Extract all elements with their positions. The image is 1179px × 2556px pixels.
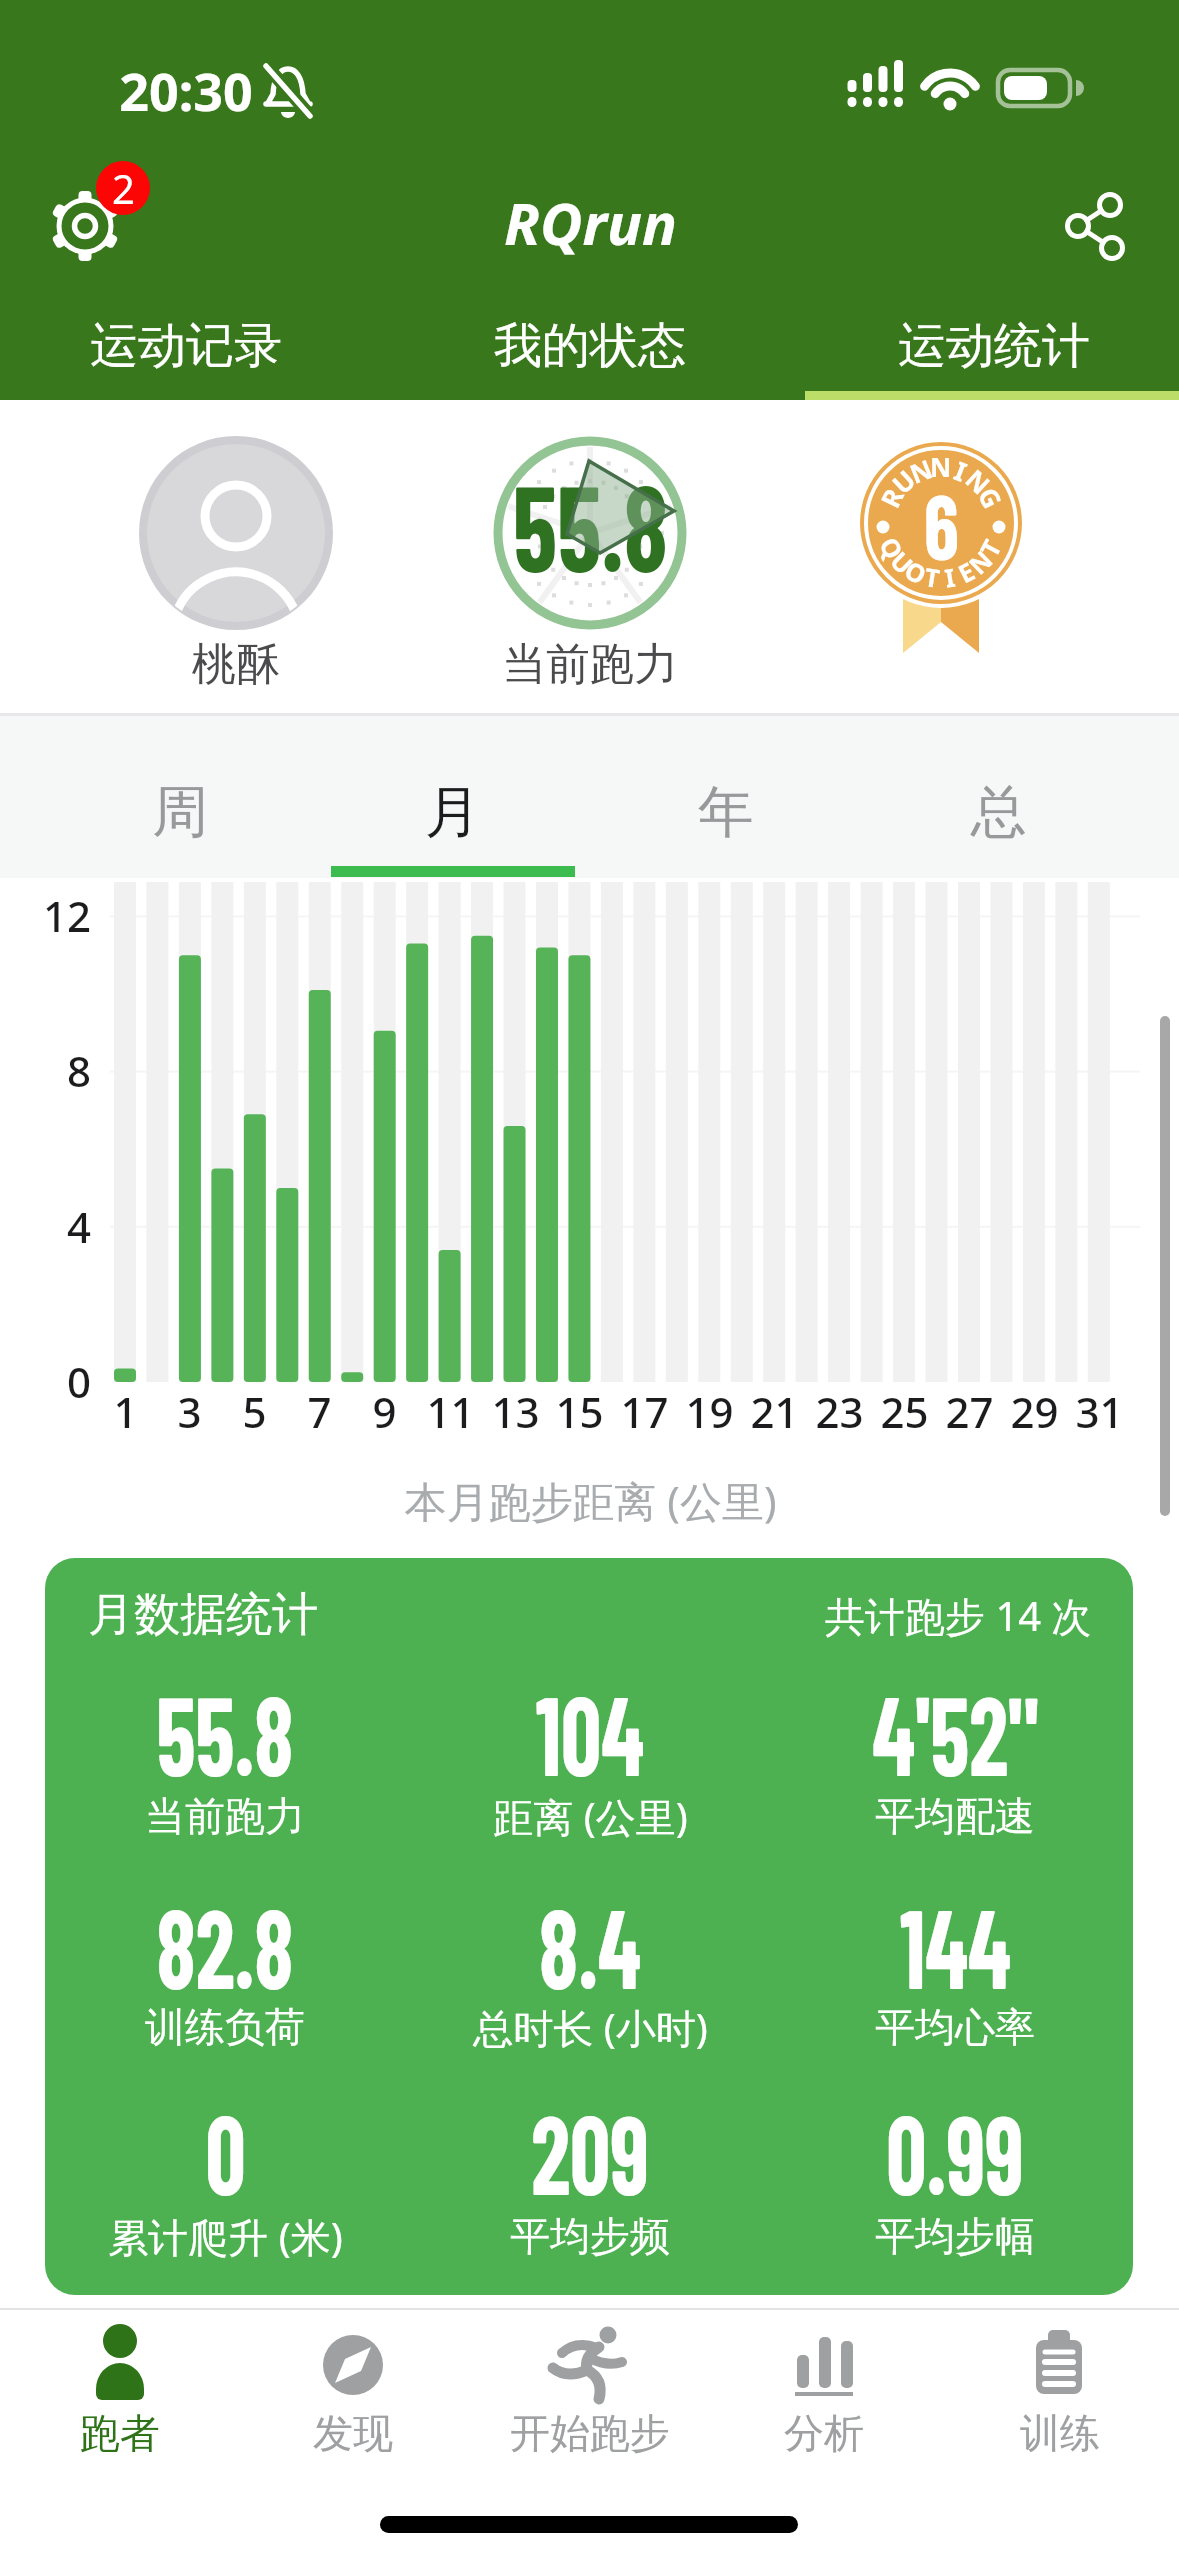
staticText: T [972, 533, 1009, 562]
staticText: 13 [491, 1383, 540, 1440]
staticText: 25 [880, 1383, 929, 1440]
staticText: 0 [67, 1353, 92, 1410]
button[interactable] [140, 436, 334, 630]
staticText: 距离 (公里) [493, 1789, 688, 1844]
staticText: 当前跑力 [502, 637, 678, 692]
staticText: 55.8 [513, 451, 668, 596]
staticText: I [950, 452, 973, 489]
button[interactable] [1040, 180, 1140, 280]
staticText: 5 [242, 1383, 267, 1440]
button[interactable] [855, 436, 1035, 636]
staticText: 104 [536, 1665, 644, 1798]
staticText: 82.8 [156, 1878, 294, 2011]
staticText: 平均步幅 [875, 2211, 1035, 2261]
button[interactable] [493, 436, 687, 630]
staticText: 年 [698, 777, 754, 848]
button[interactable]: 月 [371, 745, 535, 879]
button[interactable]: 分析 [724, 2385, 924, 2481]
staticText: 平均心率 [875, 2002, 1035, 2052]
staticText: 总 [971, 777, 1027, 848]
staticText: 月数据统计 [88, 1586, 318, 1644]
button[interactable]: 开始跑步 [430, 2385, 750, 2481]
staticText: 8.4 [539, 1878, 641, 2011]
staticText: 2 [112, 161, 135, 215]
button[interactable]: 我的状态 [406, 288, 774, 403]
staticText: N [930, 449, 952, 484]
button[interactable] [40, 170, 150, 280]
button[interactable] [530, 2320, 650, 2450]
staticText: 运动记录 [90, 316, 282, 376]
staticText: O [899, 552, 933, 592]
staticText: 27 [945, 1383, 994, 1440]
staticText: 平均配速 [875, 1791, 1035, 1841]
staticText: 发现 [313, 2408, 393, 2458]
staticText: 20:30 [119, 55, 253, 126]
staticText: Q [872, 531, 912, 565]
staticText: 19 [685, 1383, 734, 1440]
button[interactable]: 跑者 [20, 2385, 220, 2481]
button[interactable] [764, 2320, 884, 2450]
staticText: 11 [426, 1383, 475, 1440]
staticText: 开始跑步 [510, 2408, 670, 2458]
staticText: 55.8 [156, 1665, 294, 1798]
staticText: 总时长 (小时) [473, 2000, 708, 2055]
staticText: 训练 [1020, 2408, 1100, 2458]
staticText: 29 [1010, 1383, 1059, 1440]
button[interactable]: 运动统计 [810, 288, 1178, 403]
staticText: 月 [425, 777, 481, 848]
button[interactable] [293, 2320, 413, 2450]
button[interactable] [60, 2320, 180, 2450]
staticText: 本月跑步距离 (公里) [404, 1472, 777, 1529]
staticText: R [872, 481, 911, 513]
staticText: 1 [113, 1383, 138, 1440]
staticText: 17 [620, 1383, 669, 1440]
staticText: 共计跑步 14 次 [825, 1588, 1092, 1643]
staticText: 31 [1075, 1383, 1124, 1440]
staticText: 累计爬升 (米) [108, 2209, 343, 2264]
button[interactable]: 训练 [960, 2385, 1160, 2481]
staticText: 3 [177, 1383, 202, 1440]
staticText: N [905, 450, 938, 491]
staticText: I [942, 559, 957, 594]
staticText: 0 [205, 2084, 246, 2217]
staticText: 跑者 [80, 2408, 160, 2458]
staticText: 平均步频 [510, 2211, 670, 2261]
staticText: 8 [67, 1042, 92, 1099]
staticText: 周 [152, 777, 208, 848]
staticText: 23 [815, 1383, 864, 1440]
staticText: 209 [531, 2084, 649, 2217]
staticText: 4'52" [872, 1665, 1039, 1798]
staticText: 12 [43, 887, 92, 944]
staticText: 训练负荷 [145, 2002, 305, 2052]
staticText: 7 [307, 1383, 332, 1440]
staticText: U [884, 462, 922, 501]
button[interactable] [45, 1558, 1133, 2295]
staticText: U [884, 543, 921, 581]
staticText: E [952, 553, 981, 590]
staticText: 我的状态 [494, 316, 686, 376]
staticText: 当前跑力 [145, 1791, 305, 1841]
staticText: 21 [750, 1383, 799, 1440]
staticText: 0.99 [886, 2084, 1024, 2217]
staticText: 144 [900, 1878, 1011, 2011]
staticText: RQrun [504, 183, 677, 262]
button[interactable]: 发现 [253, 2385, 453, 2481]
staticText: 15 [555, 1383, 604, 1440]
staticText: 4 [67, 1198, 92, 1255]
staticText: N [961, 542, 1000, 581]
staticText: G [971, 481, 1011, 514]
staticText: 6 [924, 468, 959, 578]
staticText: 9 [372, 1383, 397, 1440]
button[interactable]: 总 [917, 745, 1081, 879]
button[interactable] [1000, 2320, 1120, 2450]
button[interactable]: 年 [644, 745, 808, 879]
staticText: N [959, 461, 999, 502]
staticText: 分析 [784, 2408, 864, 2458]
staticText: T [922, 559, 943, 595]
button[interactable]: 周 [98, 745, 262, 879]
staticText: 运动统计 [898, 316, 1090, 376]
staticText: 桃酥 [192, 637, 280, 692]
button[interactable]: 运动记录 [2, 288, 370, 403]
